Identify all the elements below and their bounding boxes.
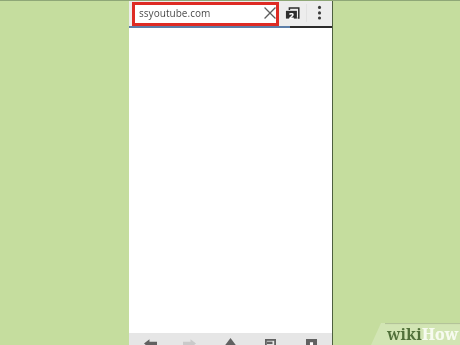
button[interactable]: ssyoutube.com [132, 2, 279, 26]
button[interactable]: Tabs [284, 5, 302, 21]
button[interactable]: Downloads [306, 339, 317, 345]
button[interactable]: More options [315, 4, 324, 22]
button[interactable]: Home [224, 338, 237, 345]
staticText: 2 [289, 10, 294, 22]
staticText: wiki [387, 323, 422, 345]
staticText: ssyoutube.com [139, 6, 211, 20]
button[interactable]: Tabs [265, 339, 276, 345]
button[interactable]: Forward [183, 338, 196, 345]
button[interactable]: Back [144, 338, 157, 345]
staticText: How [422, 323, 459, 345]
